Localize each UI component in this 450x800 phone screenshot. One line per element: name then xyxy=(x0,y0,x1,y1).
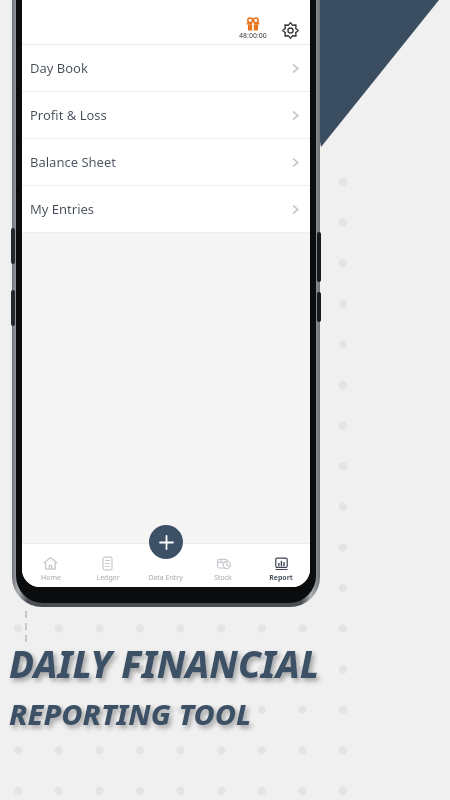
button[interactable]: Day Book xyxy=(22,45,310,92)
staticText: Home xyxy=(41,573,61,583)
button[interactable]: Report xyxy=(252,543,310,587)
staticText: Balance Sheet xyxy=(30,153,116,171)
staticText: DAILY FINANCIAL xyxy=(9,638,320,688)
button[interactable]: Add data entry xyxy=(149,525,183,559)
button[interactable]: Rewards xyxy=(237,17,269,41)
button[interactable]: Ledger xyxy=(79,543,136,587)
button[interactable]: Data Entry xyxy=(136,543,194,587)
button[interactable]: Home xyxy=(22,543,79,587)
button[interactable]: Profit & Loss xyxy=(22,92,310,139)
staticText: Stock xyxy=(214,573,232,583)
staticText: REPORTING TOOL xyxy=(9,694,252,733)
button[interactable]: Stock xyxy=(194,543,252,587)
staticText: Ledger xyxy=(96,573,120,583)
button[interactable]: Settings xyxy=(279,19,301,41)
staticText: 48:00:00 xyxy=(239,31,267,41)
staticText: Day Book xyxy=(30,59,88,77)
staticText: My Entries xyxy=(30,200,95,218)
staticText: Report xyxy=(269,573,293,583)
staticText: Profit & Loss xyxy=(30,106,107,124)
button[interactable]: My Entries xyxy=(22,186,310,233)
staticText: Data Entry xyxy=(148,573,183,583)
button[interactable]: Balance Sheet xyxy=(22,139,310,186)
